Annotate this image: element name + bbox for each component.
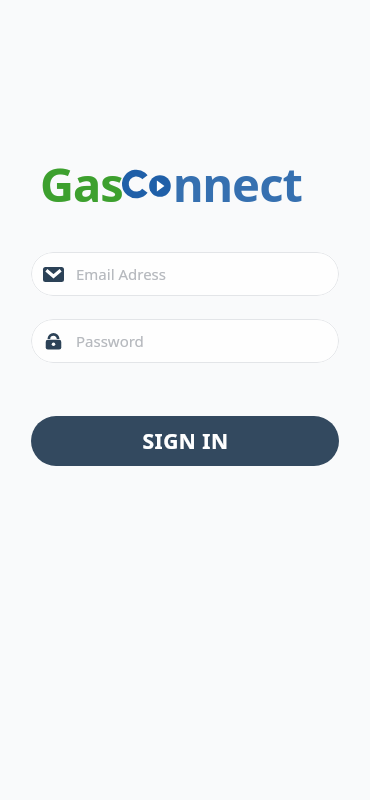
button[interactable]: Password [31, 319, 339, 363]
staticText: SIGN IN [142, 427, 229, 456]
button[interactable]: Email Adress [31, 252, 339, 296]
staticText: nnect [173, 152, 302, 216]
button[interactable]: SIGN IN [31, 416, 339, 466]
staticText: Gas [40, 152, 123, 216]
staticText: Email Adress [76, 264, 166, 284]
staticText: Password [76, 331, 144, 351]
